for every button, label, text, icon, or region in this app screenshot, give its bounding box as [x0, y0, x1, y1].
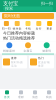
- button[interactable]: 收付款: [12, 21, 23, 30]
- button[interactable]: 更多: [44, 21, 55, 30]
- staticText: 扫一扫: [41, 1, 53, 6]
- staticText: 消息: [32, 95, 38, 99]
- staticText: 热门活动精选推荐: [3, 36, 35, 41]
- staticText: 我的: [46, 95, 52, 99]
- button[interactable]: 消息: [28, 90, 42, 99]
- button[interactable]: 健康码: [37, 42, 56, 53]
- button[interactable]: 限时优惠: [0, 12, 56, 20]
- staticText: 蚂蚁森林: [3, 49, 15, 53]
- staticText: 收付款: [13, 27, 22, 30]
- button[interactable]: 热门活动精选推荐: [3, 36, 53, 40]
- staticText: 余额宝: [23, 49, 32, 53]
- staticText: 健康码: [42, 49, 51, 53]
- staticText: 支付宝: [3, 0, 18, 7]
- button[interactable]: 余额宝: [19, 42, 37, 53]
- button[interactable]: 首页: [0, 90, 14, 99]
- staticText: 扫一扫: [2, 27, 11, 30]
- button[interactable]: 理财: [14, 90, 28, 99]
- staticText: 理财: [18, 95, 24, 99]
- staticText: 限时优惠: [4, 13, 20, 18]
- staticText: 出行: [36, 27, 42, 30]
- staticText: 今日推荐内容标题: [3, 31, 35, 36]
- staticText: 推荐: [11, 57, 17, 60]
- button[interactable]: 扫一扫: [1, 21, 12, 30]
- button[interactable]: 热门: [29, 56, 54, 68]
- button[interactable]: 推荐: [2, 56, 27, 68]
- button[interactable]: 今日推荐内容标题: [3, 31, 53, 35]
- button[interactable]: 卡包: [23, 21, 33, 30]
- staticText: 卡包: [25, 27, 31, 30]
- staticText: 限时特惠活动: [11, 61, 23, 67]
- staticText: 优选好物推荐: [38, 61, 50, 67]
- staticText: 搜索: [5, 6, 13, 11]
- staticText: 热门: [38, 57, 44, 60]
- staticText: 更多: [47, 27, 53, 30]
- button[interactable]: 出行: [33, 21, 44, 30]
- button[interactable]: 蚂蚁森林: [0, 42, 19, 53]
- button[interactable]: 我的: [42, 90, 56, 99]
- staticText: 首页: [4, 95, 10, 99]
